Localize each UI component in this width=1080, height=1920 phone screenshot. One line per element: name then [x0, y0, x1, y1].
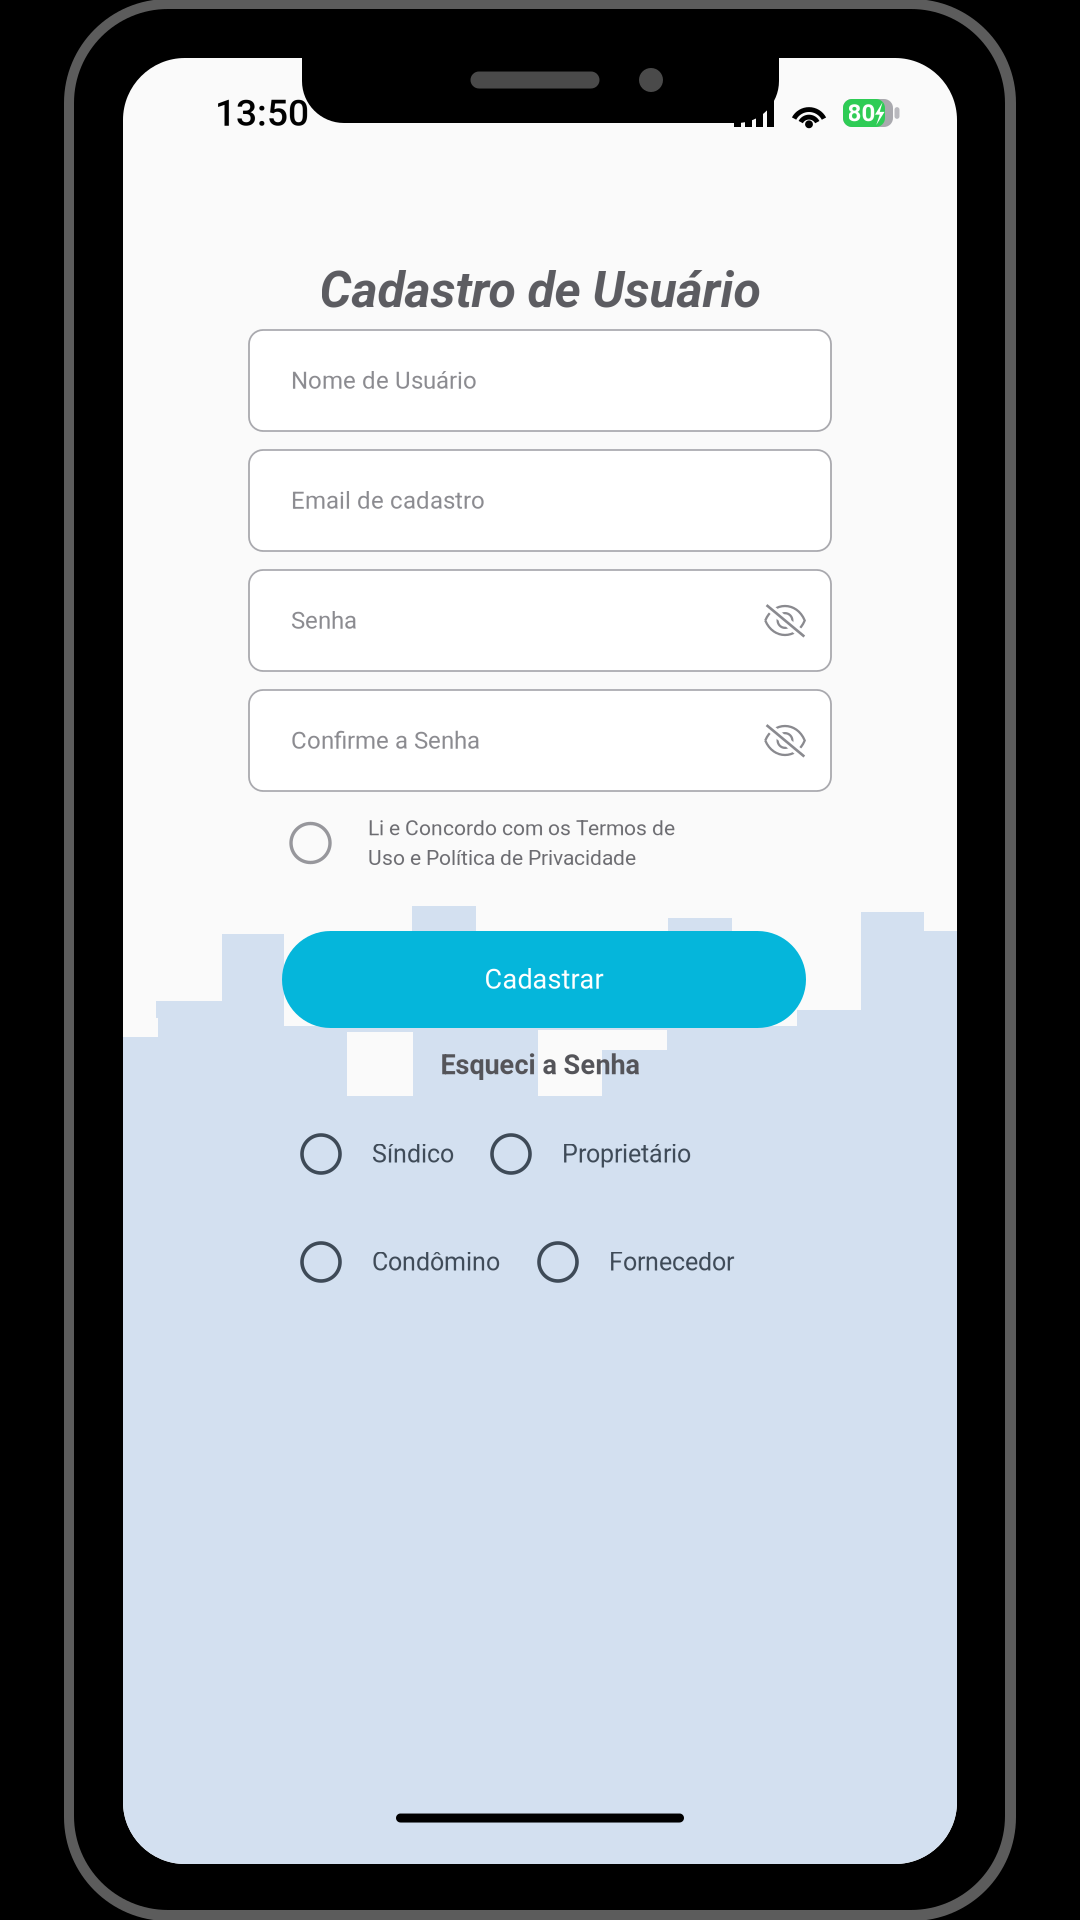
button[interactable]: Email de cadastro [249, 450, 831, 551]
button[interactable]: Nome de Usuário [249, 330, 831, 431]
staticText: Esqueci a Senha [440, 1049, 639, 1081]
staticText: Uso e Política de Privacidade [368, 845, 636, 870]
staticText: 13:50 [215, 91, 309, 135]
button[interactable]: Cadastrar [282, 931, 806, 1028]
button[interactable]: Li e Concordo com os Termos de [291, 800, 851, 886]
staticText: Email de cadastro [291, 486, 485, 514]
staticText: Nome de Usuário [291, 366, 477, 394]
button[interactable]: Proprietário [492, 1135, 812, 1173]
staticText: Condômino [372, 1247, 500, 1277]
button[interactable]: Condômino [302, 1243, 582, 1281]
staticText: Fornecedor [609, 1247, 734, 1277]
staticText: 80 [847, 99, 875, 127]
button[interactable]: Confirme a Senha [249, 690, 831, 791]
staticText: Cadastrar [484, 964, 603, 995]
staticText: Cadastro de Usuário [319, 261, 760, 319]
staticText: Li e Concordo com os Termos de [368, 816, 675, 840]
button[interactable]: Síndico [302, 1135, 542, 1173]
staticText: Senha [291, 606, 357, 634]
staticText: Síndico [372, 1139, 454, 1169]
staticText: Proprietário [562, 1139, 691, 1169]
button[interactable]: Fornecedor [539, 1243, 839, 1281]
button[interactable]: Senha [249, 570, 831, 671]
button[interactable]: Esqueci a Senha [380, 1039, 700, 1091]
staticText: Confirme a Senha [291, 726, 480, 754]
